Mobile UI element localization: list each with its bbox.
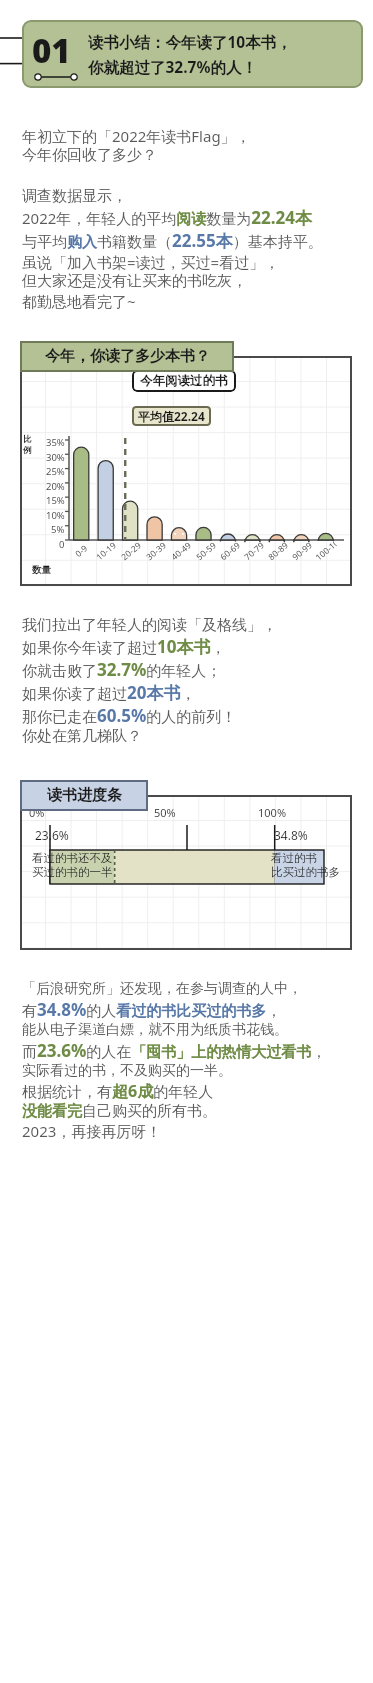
staticText: 10% (46, 509, 65, 522)
staticText: 90-99 (290, 539, 315, 563)
staticText: 买过的书的一半 (32, 865, 113, 879)
staticText: 70-79 (242, 539, 267, 563)
staticText: 「后浪研究所」还发现，在参与调查的人中， (22, 980, 302, 998)
staticText: 调查数据显示， (22, 187, 127, 206)
staticText: 34.8% (274, 827, 308, 843)
staticText: 60-69 (218, 539, 243, 563)
button[interactable]: 01 (22, 20, 363, 88)
staticText: 没能看完自己购买的所有书。 (22, 1102, 217, 1121)
staticText: 看过的书还不及 (32, 851, 113, 865)
staticText: 例 (23, 445, 32, 456)
staticText: 有34.8%的人看过的书比买过的书多， (22, 998, 282, 1021)
staticText: 23.6% (35, 827, 69, 843)
staticText: 0 (59, 538, 65, 551)
staticText: 如果你读了超过20本书， (22, 681, 196, 704)
staticText: 而23.6%的人在「囤书」上的热情大过看书， (22, 1039, 327, 1062)
staticText: 0% (29, 805, 45, 820)
staticText: 20% (46, 480, 65, 493)
staticText: 10-19 (94, 539, 119, 563)
staticText: 如果你今年读了超过10本书， (22, 635, 226, 658)
staticText: 30% (46, 451, 65, 464)
staticText: 2023，再接再厉呀！ (22, 1121, 162, 1141)
staticText: 读书进度条 (47, 786, 122, 805)
staticText: 25% (46, 465, 65, 478)
staticText: 50-59 (194, 539, 219, 563)
staticText: 虽说「加入书架=读过，买过=看过」， (22, 252, 280, 272)
staticText: 15% (46, 494, 65, 507)
staticText: 都勤恳地看完了~ (22, 291, 136, 311)
staticText: 与平均购入书籍数量（22.55本）基本持平。 (22, 229, 323, 252)
staticText: 0-9 (73, 542, 90, 560)
staticText: 比买过的书多 (271, 865, 340, 879)
staticText: 5% (51, 523, 65, 536)
button[interactable]: 读书进度条 (20, 780, 148, 811)
staticText: 今年你回收了多少？ (22, 146, 157, 165)
staticText: 01 (32, 28, 71, 73)
staticText: 实际看过的书，不及购买的一半。 (22, 1062, 232, 1080)
staticText: 35% (46, 436, 65, 449)
staticText: 今年阅读过的书 (140, 373, 228, 389)
staticText: 平均值22.24 (138, 408, 205, 424)
staticText: 年初立下的「2022年读书Flag」， (22, 126, 251, 146)
staticText: 能从电子渠道白嫖，就不用为纸质书花钱。 (22, 1021, 288, 1039)
staticText: 那你已走在60.5%的人的前列！ (22, 704, 237, 727)
staticText: 你处在第几梯队？ (22, 727, 142, 746)
staticText: 100% (258, 805, 287, 820)
staticText: 50% (154, 805, 176, 820)
button[interactable]: 今年，你读了多少本书？ (20, 341, 234, 372)
staticText: 比 (23, 434, 32, 445)
staticText: 40-49 (169, 539, 194, 563)
staticText: 2022年，年轻人的平均阅读数量为22.24本 (22, 206, 312, 229)
staticText: 但大家还是没有让买来的书吃灰， (22, 272, 247, 291)
staticText: 看过的书 (271, 851, 317, 865)
staticText: 你就击败了32.7%的年轻人； (22, 658, 222, 681)
staticText: 100-100 (313, 539, 339, 563)
staticText: 80-89 (266, 539, 291, 563)
staticText: 我们拉出了年轻人的阅读「及格线」， (22, 616, 277, 635)
staticText: 30-39 (144, 539, 169, 563)
staticText: 读书小结：今年读了10本书， (88, 31, 292, 52)
staticText: 你就超过了32.7%的人！ (88, 56, 257, 77)
staticText: 今年，你读了多少本书？ (45, 347, 210, 366)
staticText: 根据统计，有超6成的年轻人 (22, 1080, 214, 1102)
staticText: 20-29 (119, 539, 144, 563)
staticText: 数量 (32, 564, 51, 576)
